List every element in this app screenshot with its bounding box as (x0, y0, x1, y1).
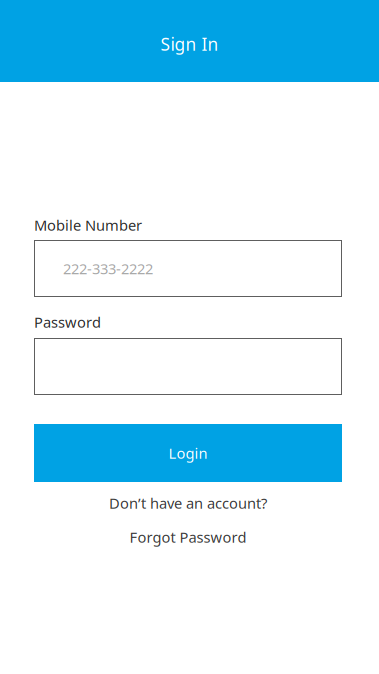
button[interactable]: Login (34, 424, 342, 482)
staticText: Login (168, 443, 207, 463)
button[interactable]: Don’t have an account? (34, 495, 342, 511)
staticText: Sign In (160, 32, 218, 55)
staticText: Mobile Number (34, 215, 142, 235)
button[interactable]: Mobile Number (34, 240, 342, 297)
staticText: 222-333-2222 (63, 259, 153, 278)
button[interactable]: Password (34, 338, 342, 395)
staticText: Don’t have an account? (109, 493, 267, 513)
staticText: Forgot Password (129, 527, 246, 547)
staticText: Password (34, 312, 101, 332)
button[interactable]: Forgot Password (34, 529, 342, 545)
